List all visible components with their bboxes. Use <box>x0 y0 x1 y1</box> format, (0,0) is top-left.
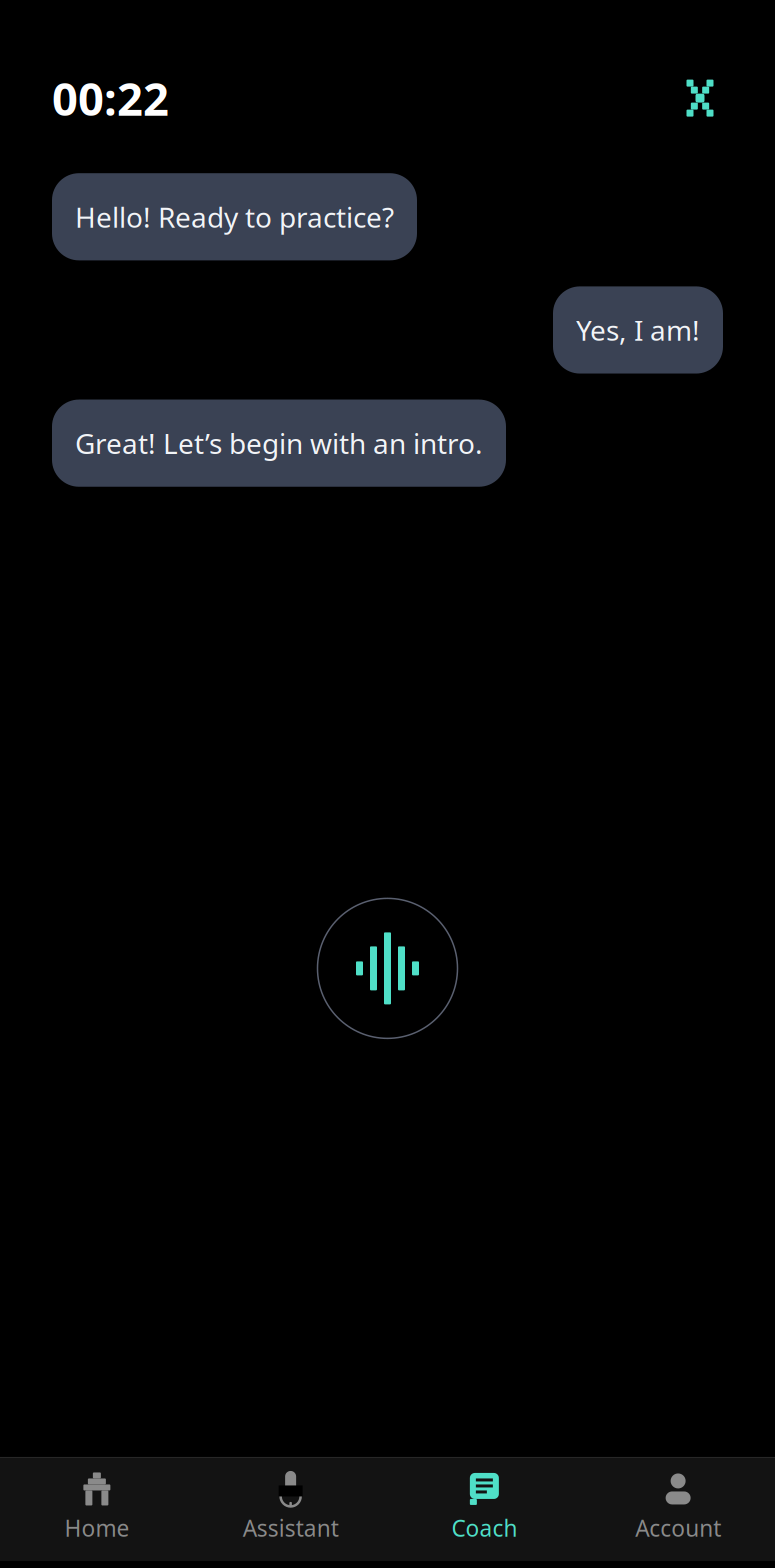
staticText: Yes, I am! <box>576 311 700 349</box>
staticText: Coach <box>451 1513 517 1543</box>
button[interactable]: Voice input <box>312 893 462 1043</box>
staticText: Assistant <box>243 1513 339 1543</box>
button[interactable]: Home <box>0 1458 194 1561</box>
staticText: Hello! Ready to practice? <box>75 198 394 235</box>
button[interactable]: Assistant <box>194 1458 388 1561</box>
staticText: Great! Let’s begin with an intro. <box>75 425 483 462</box>
staticText: Home <box>64 1513 129 1543</box>
staticText: 00:22 <box>52 68 169 128</box>
button[interactable]: Close <box>677 75 723 121</box>
staticText: Account <box>635 1513 721 1543</box>
button[interactable]: Coach <box>387 1458 581 1561</box>
button[interactable]: Account <box>581 1458 775 1561</box>
